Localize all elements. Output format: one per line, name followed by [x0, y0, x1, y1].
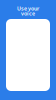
staticText: Use your [17, 5, 39, 12]
staticText: voice [21, 10, 35, 17]
